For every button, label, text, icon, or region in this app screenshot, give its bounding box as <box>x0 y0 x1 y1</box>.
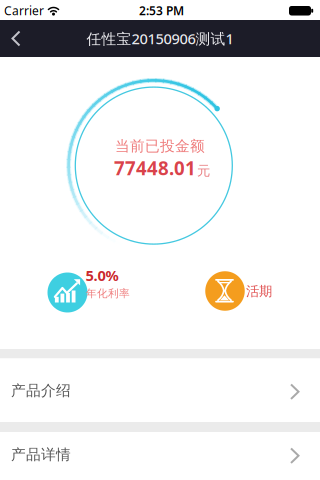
staticText: 元 <box>197 163 210 179</box>
staticText: 77448.01 <box>114 156 196 180</box>
staticText: 年化利率 <box>86 287 130 300</box>
staticText: 产品介绍 <box>11 381 71 399</box>
button[interactable]: Back <box>0 20 34 57</box>
staticText: Carrier <box>4 2 44 18</box>
button[interactable]: 产品详情 <box>0 432 320 480</box>
staticText: 2:53 PM <box>139 2 184 18</box>
button[interactable]: 产品介绍 <box>0 358 320 422</box>
staticText: 5.0% <box>85 266 118 285</box>
staticText: 活期 <box>246 283 272 299</box>
staticText: 产品详情 <box>11 445 71 463</box>
staticText: 任性宝20150906测试1 <box>86 29 233 48</box>
staticText: 当前已投金额 <box>115 137 205 155</box>
